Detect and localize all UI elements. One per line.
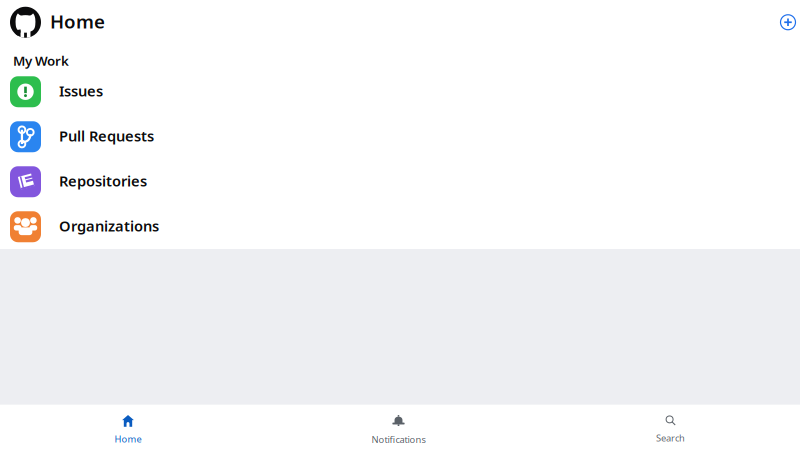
button[interactable]: Organizations xyxy=(0,204,800,249)
staticText: Notifications xyxy=(371,433,425,446)
staticText: My Work xyxy=(13,52,69,69)
staticText: Home xyxy=(50,9,105,34)
staticText: Home xyxy=(114,433,141,445)
button[interactable]: Pull Requests xyxy=(0,114,800,159)
button[interactable]: Repositories xyxy=(0,159,800,204)
staticText: Organizations xyxy=(59,216,159,235)
staticText: Search xyxy=(656,432,685,444)
button[interactable]: Home xyxy=(0,404,256,450)
button[interactable]: Create new xyxy=(772,6,800,38)
button[interactable]: Search xyxy=(541,404,800,450)
staticText: Issues xyxy=(59,81,103,100)
staticText: Pull Requests xyxy=(59,126,154,145)
button[interactable]: Issues xyxy=(0,69,800,114)
staticText: Repositories xyxy=(59,171,147,190)
button[interactable]: Notifications xyxy=(256,404,541,450)
